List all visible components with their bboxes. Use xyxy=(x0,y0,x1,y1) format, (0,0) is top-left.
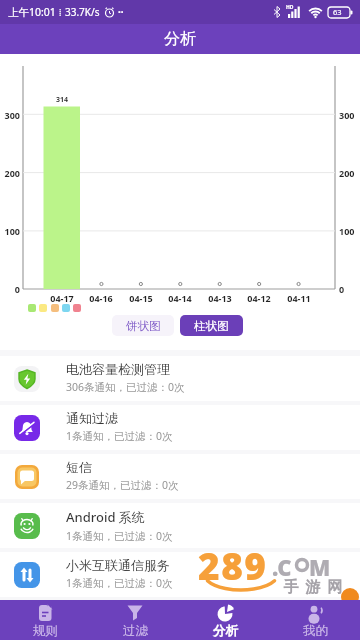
button[interactable]: 我的 xyxy=(270,600,360,640)
staticText: 04-16 xyxy=(79,292,123,304)
staticText: 0 xyxy=(0,283,20,295)
staticText: 柱状图 xyxy=(194,319,229,333)
button[interactable]: 饼状图 xyxy=(112,315,174,336)
staticText: 我的 xyxy=(303,623,328,639)
staticText: 04-14 xyxy=(158,292,202,304)
staticText: 电池容量检测管理 xyxy=(66,361,170,377)
staticText: 1条通知，已过滤：0次 xyxy=(66,529,173,543)
staticText: M xyxy=(309,552,331,582)
staticText: 04-12 xyxy=(237,292,281,304)
staticText: 300 xyxy=(0,109,20,121)
staticText: 200 xyxy=(0,167,20,179)
staticText: 0 xyxy=(339,283,360,295)
staticText: ·· xyxy=(118,5,124,19)
staticText: 上午10:01 xyxy=(8,5,56,19)
staticText: 33.7K/s xyxy=(65,5,100,19)
staticText: 306条通知，已过滤：0次 xyxy=(66,380,185,394)
staticText: 29条通知，已过滤：0次 xyxy=(66,478,179,492)
staticText: 1条通知，已过滤：0次 xyxy=(66,576,173,590)
staticText: 300 xyxy=(339,109,360,121)
staticText: 手游网 xyxy=(280,578,346,597)
button[interactable]: 小米互联通信服务 xyxy=(0,552,360,597)
button[interactable]: 柱状图 xyxy=(180,315,243,336)
staticText: 04-17 xyxy=(40,292,84,304)
staticText: 通知过滤 xyxy=(66,410,118,426)
button[interactable]: 通知过滤 xyxy=(0,405,360,450)
staticText: ⁞ xyxy=(59,6,62,18)
staticText: Android 系统 xyxy=(66,508,145,526)
staticText: 过滤 xyxy=(123,623,148,639)
staticText: 饼状图 xyxy=(126,319,161,333)
button[interactable]: Android 系统 xyxy=(0,503,360,548)
staticText: 分析 xyxy=(213,623,238,639)
button[interactable]: 过滤 xyxy=(90,600,180,640)
staticText: 04-11 xyxy=(277,292,321,304)
staticText: 289 xyxy=(198,540,268,590)
button[interactable]: 规则 xyxy=(0,600,90,640)
button[interactable]: 电池容量检测管理 xyxy=(0,356,360,401)
staticText: 小米互联通信服务 xyxy=(66,557,170,573)
staticText: 规则 xyxy=(33,623,58,639)
staticText: 200 xyxy=(339,167,360,179)
staticText: 100 xyxy=(0,225,20,237)
staticText: 63 xyxy=(333,7,342,17)
staticText: HD xyxy=(286,4,294,11)
staticText: 短信 xyxy=(66,459,92,475)
button[interactable]: 分析 xyxy=(180,600,270,640)
staticText: 04-13 xyxy=(198,292,242,304)
staticText: 100 xyxy=(339,225,360,237)
staticText: 314 xyxy=(42,95,82,105)
staticText: 1条通知，已过滤：0次 xyxy=(66,429,173,443)
staticText: 分析 xyxy=(164,29,196,49)
staticText: .C xyxy=(272,552,292,582)
staticText: 04-15 xyxy=(119,292,163,304)
button[interactable]: 短信 xyxy=(0,454,360,499)
